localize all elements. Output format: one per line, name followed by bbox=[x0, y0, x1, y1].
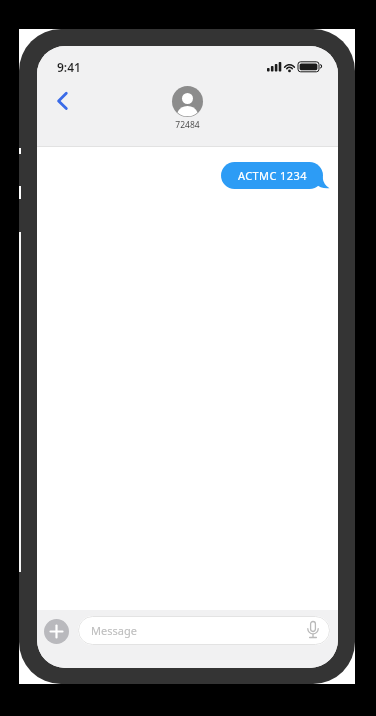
button[interactable] bbox=[47, 84, 77, 114]
button[interactable]: ACTMC 1234 bbox=[221, 162, 323, 189]
button[interactable] bbox=[44, 619, 69, 644]
button[interactable] bbox=[172, 86, 203, 117]
staticText: Message bbox=[91, 623, 137, 638]
button[interactable]: Message bbox=[78, 616, 330, 645]
staticText: 72484 bbox=[37, 119, 338, 131]
staticText: ACTMC 1234 bbox=[238, 168, 307, 183]
staticText: 9:41 bbox=[57, 59, 81, 75]
